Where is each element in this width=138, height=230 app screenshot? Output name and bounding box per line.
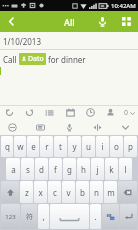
button[interactable]: . bbox=[90, 204, 101, 229]
staticText: 0 bbox=[124, 108, 129, 118]
staticText: o bbox=[114, 141, 119, 152]
button[interactable]: a bbox=[6, 158, 20, 180]
button[interactable]: 123 bbox=[1, 204, 20, 229]
button[interactable]: , bbox=[38, 204, 49, 229]
button[interactable]: y bbox=[68, 136, 81, 157]
button[interactable]: Voice input bbox=[90, 11, 114, 32]
staticText: b bbox=[80, 187, 85, 198]
button[interactable]: Hide keyboard bbox=[119, 121, 132, 134]
button[interactable]: Voice bbox=[63, 121, 76, 134]
button[interactable]: s bbox=[21, 158, 34, 180]
staticText: s bbox=[26, 164, 30, 175]
staticText: x bbox=[38, 187, 43, 198]
button[interactable]: f bbox=[49, 158, 62, 180]
button[interactable]: List bbox=[43, 106, 56, 119]
staticText: i bbox=[101, 141, 104, 152]
button[interactable]: r bbox=[40, 136, 53, 157]
button[interactable]: Redo bbox=[23, 106, 36, 119]
button[interactable]: Emoji bbox=[6, 121, 19, 134]
button[interactable]: Switch input bbox=[102, 204, 119, 229]
button[interactable]: v bbox=[62, 181, 75, 203]
button[interactable]: q bbox=[1, 136, 13, 157]
staticText: 123 bbox=[5, 213, 16, 221]
button[interactable]: l bbox=[119, 158, 132, 180]
button[interactable]: p bbox=[124, 136, 137, 157]
button[interactable]: c bbox=[48, 181, 61, 203]
button[interactable]: g bbox=[63, 158, 76, 180]
button[interactable]: j bbox=[91, 158, 104, 180]
button[interactable]: More options bbox=[124, 108, 135, 118]
staticText: t bbox=[59, 141, 62, 152]
staticText: j bbox=[96, 164, 99, 175]
button[interactable]: m bbox=[104, 181, 117, 203]
button[interactable]: d bbox=[35, 158, 48, 180]
button[interactable]: z bbox=[20, 181, 33, 203]
button[interactable]: e bbox=[27, 136, 39, 157]
button[interactable]: x bbox=[34, 181, 47, 203]
staticText: n bbox=[94, 187, 99, 198]
button[interactable]: i bbox=[96, 136, 109, 157]
button[interactable]: Grid view bbox=[114, 11, 138, 32]
staticText: c bbox=[53, 187, 57, 198]
staticText: a bbox=[11, 164, 16, 175]
button[interactable]: n bbox=[90, 181, 103, 203]
button[interactable]: Call bbox=[3, 53, 138, 65]
button[interactable]: h bbox=[77, 158, 90, 180]
staticText: w bbox=[17, 141, 24, 152]
button[interactable]: w bbox=[14, 136, 26, 157]
staticText: . bbox=[94, 211, 97, 222]
staticText: p bbox=[128, 141, 133, 152]
button[interactable] bbox=[50, 204, 89, 229]
staticText: e bbox=[31, 141, 36, 152]
staticText: z bbox=[25, 187, 29, 198]
staticText: 符 bbox=[26, 212, 33, 221]
staticText: v bbox=[66, 187, 71, 198]
staticText: u bbox=[86, 141, 91, 152]
button[interactable]: Undo bbox=[3, 106, 16, 119]
staticText: , bbox=[42, 211, 45, 222]
staticText: q bbox=[5, 141, 10, 152]
button[interactable]: Clock bbox=[84, 106, 97, 119]
staticText: m bbox=[107, 187, 115, 198]
button[interactable]: 符 bbox=[21, 204, 37, 229]
button[interactable]: Shift bbox=[1, 181, 19, 203]
staticText: f bbox=[54, 164, 57, 175]
staticText: k bbox=[109, 164, 114, 175]
button[interactable]: Backspace bbox=[118, 181, 137, 203]
staticText: 1/10/2013 bbox=[3, 36, 41, 47]
staticText: h bbox=[81, 164, 86, 175]
button[interactable]: o bbox=[110, 136, 123, 157]
staticText: d bbox=[39, 164, 44, 175]
button[interactable]: u bbox=[82, 136, 95, 157]
staticText: g bbox=[67, 164, 72, 175]
button[interactable]: Enter bbox=[120, 204, 137, 229]
button[interactable]: Keyboard bbox=[34, 121, 47, 134]
button[interactable]: Resize bbox=[91, 121, 104, 134]
button[interactable]: Back bbox=[0, 11, 22, 32]
staticText: for dinner bbox=[48, 54, 86, 65]
button[interactable]: b bbox=[76, 181, 89, 203]
staticText: Call bbox=[3, 54, 17, 65]
button[interactable]: k bbox=[105, 158, 118, 180]
staticText: 10:42AM bbox=[111, 2, 136, 10]
button[interactable]: Contact bbox=[104, 106, 117, 119]
staticText: l bbox=[124, 164, 127, 175]
staticText: All bbox=[64, 16, 75, 28]
staticText: r bbox=[45, 141, 49, 152]
button[interactable]: Calendar bbox=[64, 106, 77, 119]
staticText: y bbox=[72, 141, 77, 152]
button[interactable]: t bbox=[54, 136, 67, 157]
staticText: Dato bbox=[28, 54, 44, 64]
